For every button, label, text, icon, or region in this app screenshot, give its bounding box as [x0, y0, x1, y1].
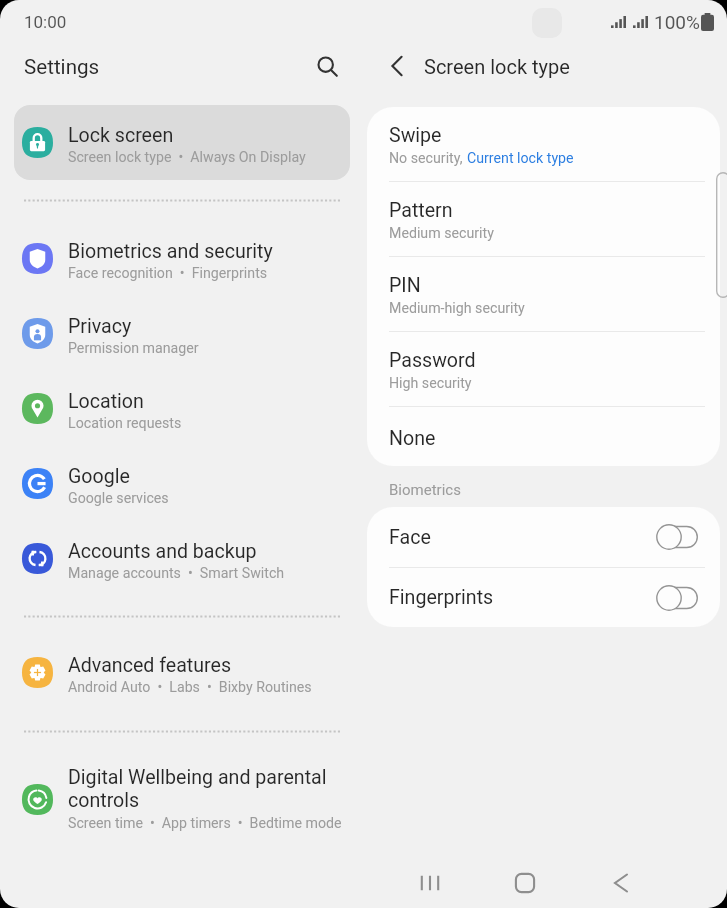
staticText: Medium security: [389, 225, 494, 242]
button[interactable]: Lock screen: [14, 105, 350, 180]
staticText: No security,: [389, 150, 467, 167]
staticText: Fingerprints: [389, 586, 657, 609]
button[interactable]: Pattern: [367, 182, 720, 256]
staticText: Location requests: [68, 415, 182, 432]
staticText: Pattern: [389, 199, 453, 222]
button[interactable]: Face: [367, 507, 720, 567]
staticText: Accounts and backup: [68, 540, 257, 563]
staticText: Permission manager: [68, 340, 199, 357]
staticText: Face recognition • Fingerprints: [68, 265, 268, 282]
staticText: Medium-high security: [389, 300, 525, 317]
button[interactable]: Location: [14, 371, 350, 446]
button[interactable]: Biometrics and security: [14, 221, 350, 296]
staticText: Manage accounts • Smart Switch: [68, 565, 285, 582]
staticText: Google services: [68, 490, 169, 507]
staticText: High security: [389, 375, 472, 392]
button[interactable]: Advanced features: [14, 635, 350, 710]
button[interactable]: Fingerprints: [367, 568, 720, 627]
button[interactable]: Swipe: [367, 107, 720, 181]
staticText: PIN: [389, 274, 421, 297]
staticText: Biometrics: [389, 481, 461, 499]
button[interactable]: [14, 105, 350, 180]
button[interactable]: Recents: [404, 857, 456, 908]
button[interactable]: Home: [499, 857, 551, 908]
staticText: Swipe: [389, 124, 442, 147]
staticText: Lock screen: [68, 124, 174, 147]
staticText: Settings: [24, 55, 100, 79]
staticText: Screen time • App timers • Bedtime mode: [68, 815, 342, 832]
staticText: controls: [68, 789, 140, 812]
staticText: Android Auto • Labs • Bixby Routines: [68, 679, 312, 696]
staticText: Screen lock type • Always On Display: [68, 149, 306, 166]
button[interactable]: None: [367, 407, 720, 462]
staticText: Google: [68, 465, 130, 488]
button[interactable]: Digital Wellbeing and parental: [14, 750, 350, 850]
button[interactable]: Privacy: [14, 296, 350, 371]
staticText: Advanced features: [68, 654, 232, 677]
staticText: 10:00: [24, 12, 67, 32]
staticText: Location: [68, 390, 144, 413]
staticText: None: [389, 427, 436, 450]
staticText: Digital Wellbeing and parental: [68, 766, 327, 789]
staticText: Current lock type: [467, 150, 574, 167]
button[interactable]: PIN: [367, 257, 720, 331]
button[interactable]: Accounts and backup: [14, 521, 350, 596]
staticText: Privacy: [68, 315, 132, 338]
staticText: Password: [389, 349, 476, 372]
button[interactable]: Back: [595, 857, 647, 908]
button[interactable]: Google: [14, 446, 350, 521]
button[interactable]: Back: [376, 45, 418, 87]
staticText: Face: [389, 526, 657, 549]
staticText: Screen lock type: [424, 55, 570, 78]
button[interactable]: Password: [367, 332, 720, 406]
staticText: Biometrics and security: [68, 240, 273, 263]
staticText: 100%: [654, 11, 700, 33]
button[interactable]: Search: [306, 45, 350, 89]
